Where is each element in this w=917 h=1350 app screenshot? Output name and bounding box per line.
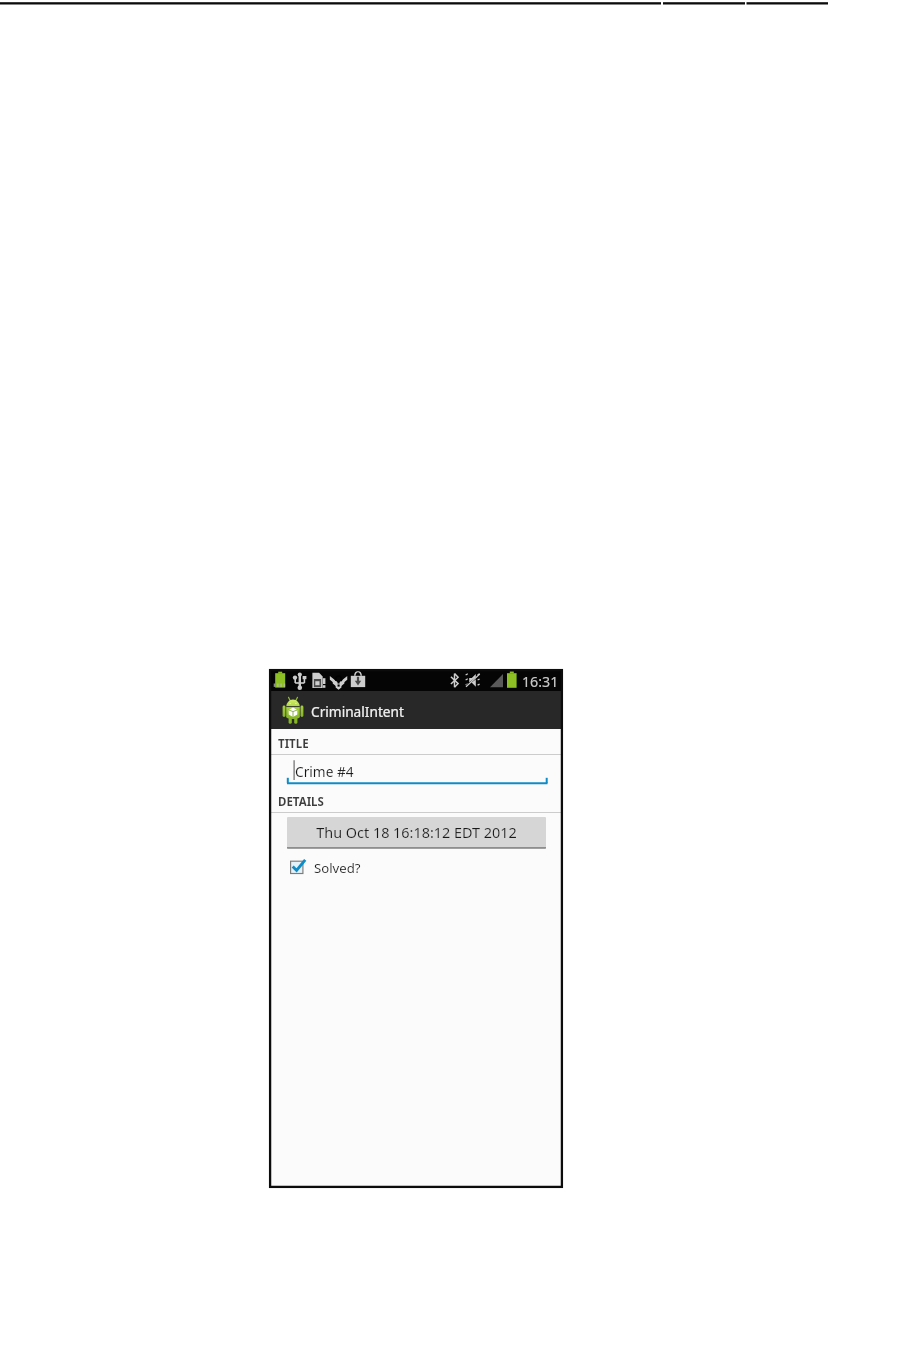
staticText: DETAILS [278,794,324,810]
button[interactable]: Thu Oct 18 16:18:12 EDT 2012 [287,817,546,849]
staticText: 16:31 [522,672,559,691]
button[interactable]: CriminalIntent — app home [269,691,563,729]
staticText: Crime #4 [295,762,354,781]
staticText: Solved? [314,859,361,877]
staticText: TITLE [278,736,309,752]
button[interactable]: Crime #4 [269,755,563,786]
staticText: Thu Oct 18 16:18:12 EDT 2012 [316,823,517,843]
button[interactable]: Solved? [269,855,563,880]
other: App icon [282,699,304,726]
staticText: CriminalIntent [311,702,404,721]
